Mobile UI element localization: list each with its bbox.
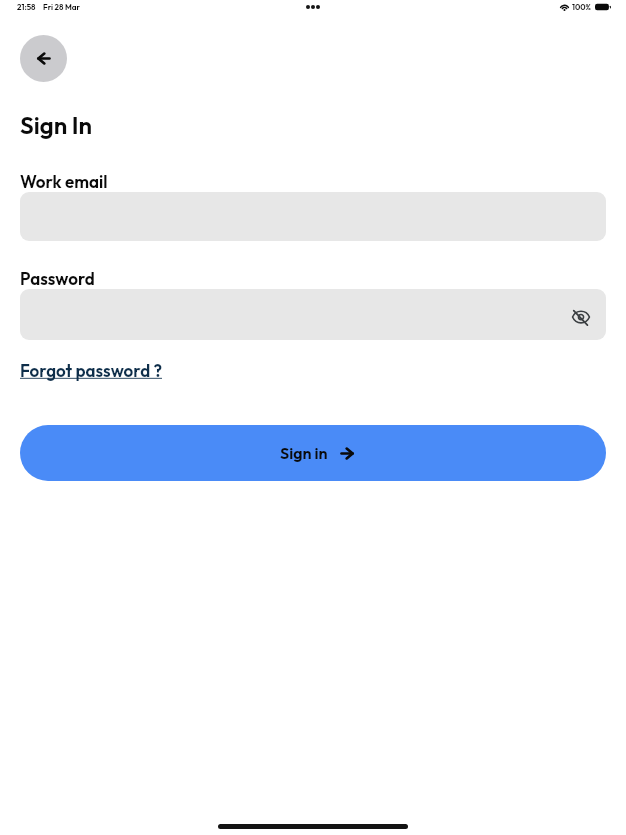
staticText: 100% — [572, 2, 591, 12]
staticText: Password — [20, 268, 95, 289]
staticText: Sign In — [20, 110, 93, 140]
button[interactable]: Back — [20, 35, 67, 82]
button[interactable]: Forgot password ? — [20, 360, 162, 381]
button[interactable]: Sign in — [20, 425, 606, 481]
button[interactable]: Show password — [20, 289, 606, 340]
staticText: 21:58 — [17, 2, 36, 12]
staticText: Sign in — [280, 443, 328, 463]
button[interactable]: Show password — [564, 300, 598, 334]
staticText: Fri 28 Mar — [43, 2, 80, 12]
staticText: Work email — [20, 171, 108, 192]
